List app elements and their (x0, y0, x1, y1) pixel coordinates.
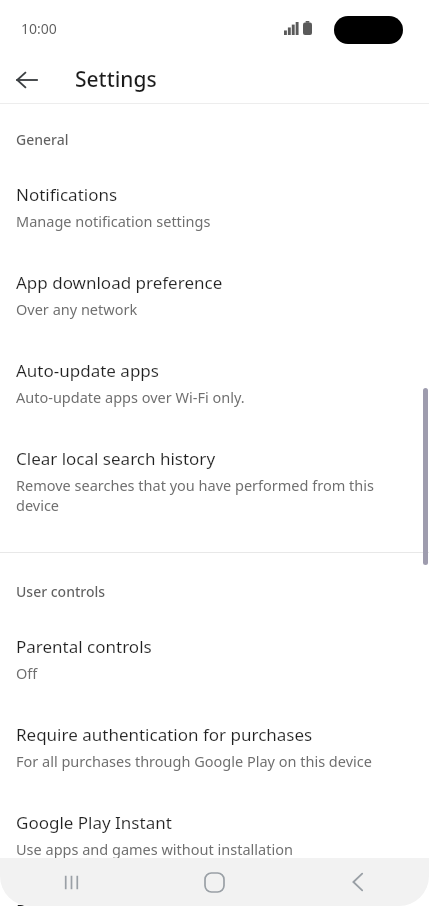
staticText: Require authentication for purchases (16, 723, 313, 746)
button[interactable]: Back (286, 858, 429, 906)
button[interactable]: Home (143, 858, 286, 906)
staticText: Manage notification settings (16, 211, 211, 231)
staticText: General (16, 130, 429, 149)
staticText: For all purchases through Google Play on… (16, 751, 372, 771)
staticText: Notifications (16, 183, 118, 206)
staticText: Use apps and games without installation (16, 839, 293, 859)
staticText: Parental controls (16, 635, 152, 658)
staticText: Clear local search history (16, 447, 216, 470)
staticText: Over any network (16, 299, 138, 319)
button[interactable]: Recent apps (0, 858, 143, 906)
staticText: User controls (16, 582, 429, 601)
staticText: Remove searches that you have performed … (16, 475, 405, 515)
button[interactable]: Google Play Instant (0, 811, 429, 859)
staticText: Settings (75, 65, 157, 94)
button[interactable]: Back (5, 58, 49, 102)
staticText: App download preference (16, 271, 223, 294)
staticText: Off (16, 663, 38, 683)
button[interactable]: Notifications (0, 183, 429, 231)
button[interactable]: Protect my updates (0, 899, 429, 906)
staticText: 10:00 (21, 19, 57, 38)
staticText: Auto-update apps (16, 359, 159, 382)
button[interactable]: Clear local search history (0, 447, 429, 515)
button[interactable]: Require authentication for purchases (0, 723, 429, 771)
button[interactable]: App download preference (0, 271, 429, 319)
staticText: Auto-update apps over Wi-Fi only. (16, 387, 245, 407)
button[interactable]: Auto-update apps (0, 359, 429, 407)
staticText: Protect my updates (16, 899, 172, 906)
staticText: Google Play Instant (16, 811, 172, 834)
button[interactable]: Parental controls (0, 635, 429, 683)
